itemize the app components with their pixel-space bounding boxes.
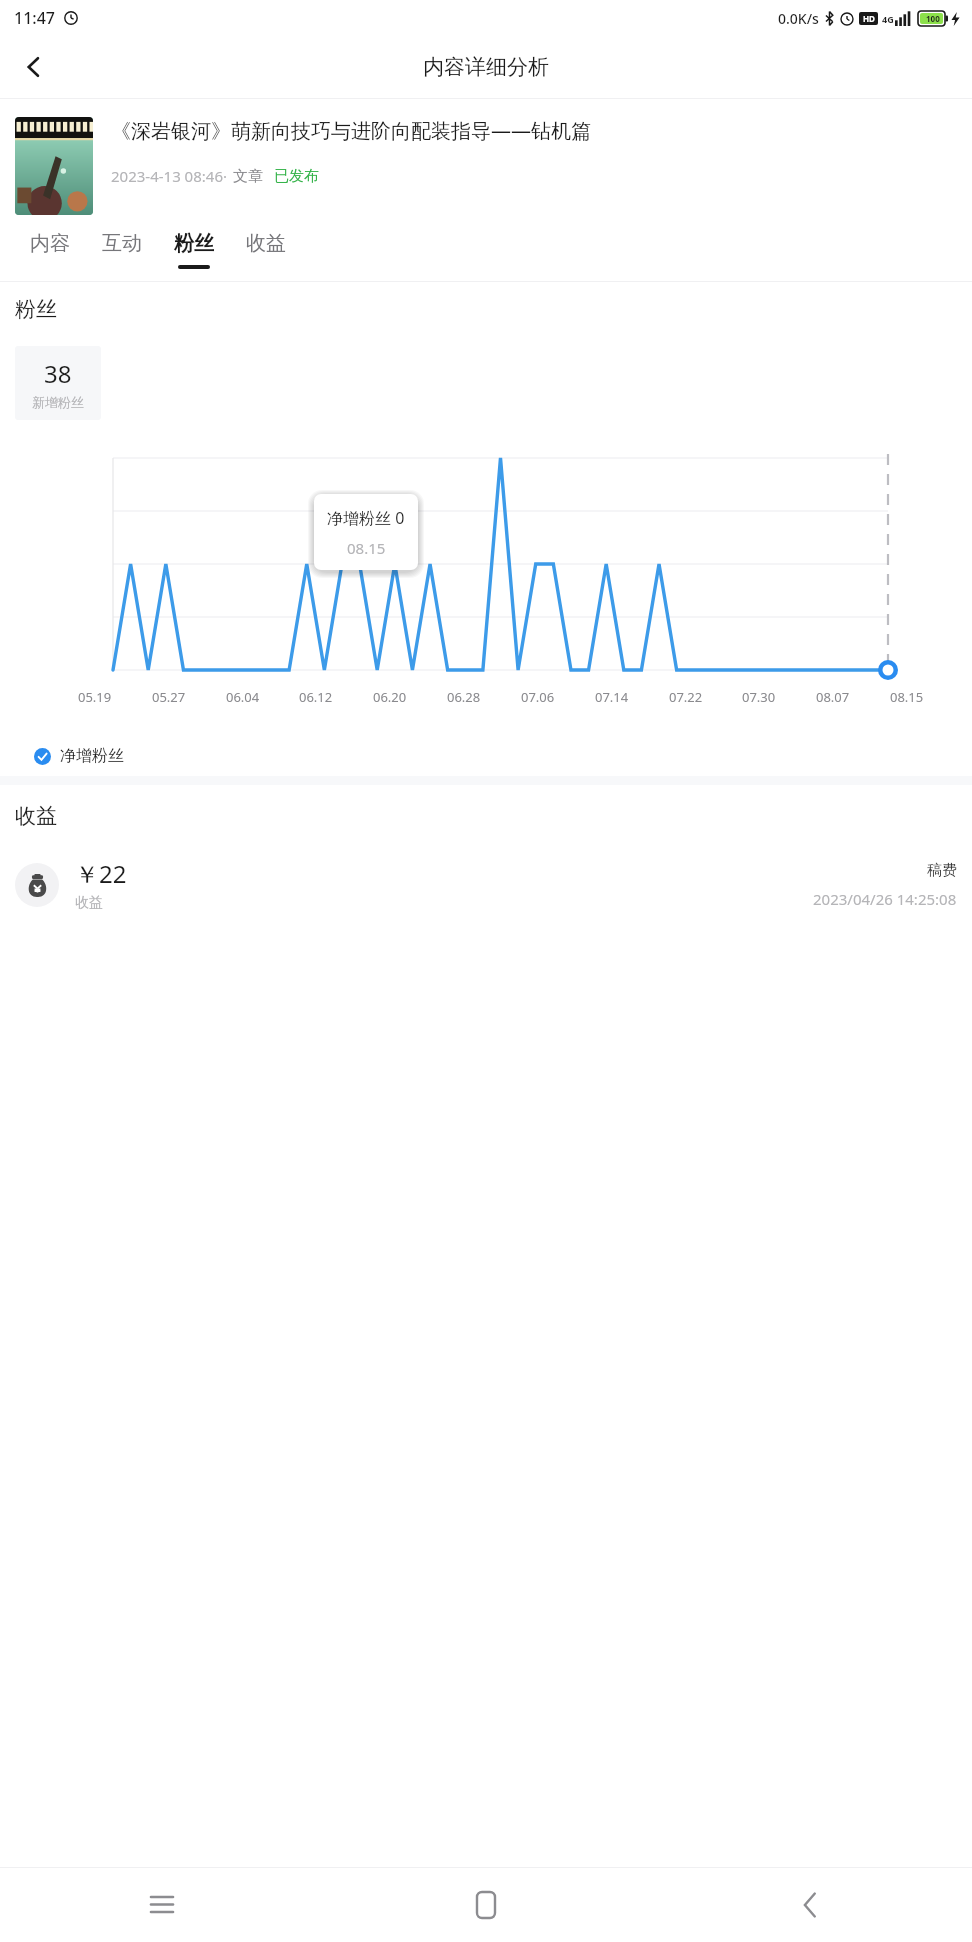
staticText: HD xyxy=(863,13,875,24)
staticText: 0.0K/s xyxy=(778,9,819,28)
staticText: 粉丝 xyxy=(174,231,214,256)
button[interactable]: Home xyxy=(324,1868,648,1942)
staticText: 05.27 xyxy=(152,688,186,706)
button[interactable]: 内容 xyxy=(14,219,86,281)
staticText: 收益 xyxy=(75,894,103,912)
staticText: 2023/04/26 14:25:08 xyxy=(813,889,957,909)
staticText: 06.12 xyxy=(299,688,333,706)
button[interactable]: 粉丝 xyxy=(158,219,230,281)
button[interactable]: ￥22 xyxy=(0,855,972,914)
staticText: 08.15 xyxy=(347,538,386,558)
staticText: 《深岩银河》萌新向技巧与进阶向配装指导――钻机篇 xyxy=(111,117,591,144)
staticText: 11:47 xyxy=(14,7,55,29)
staticText: 新增粉丝 xyxy=(32,394,84,410)
staticText: 稿费 xyxy=(927,861,957,880)
button[interactable]: 净增粉丝 xyxy=(34,746,124,766)
staticText: 内容 xyxy=(30,231,70,256)
staticText: 07.22 xyxy=(669,688,703,706)
button[interactable]: 收益 xyxy=(230,219,302,281)
staticText: 07.14 xyxy=(595,688,629,706)
staticText: 100 xyxy=(926,13,940,24)
staticText: 内容详细分析 xyxy=(423,54,549,80)
staticText: 07.06 xyxy=(521,688,555,706)
button[interactable]: Recent apps xyxy=(0,1868,324,1942)
button[interactable]: 38 xyxy=(15,346,101,420)
staticText: 收益 xyxy=(15,803,57,829)
staticText: 06.04 xyxy=(226,688,260,706)
staticText: 2023-4-13 08:46· xyxy=(111,166,227,186)
staticText: 07.30 xyxy=(742,688,776,706)
staticText: 08.07 xyxy=(816,688,850,706)
button[interactable]: Back xyxy=(648,1868,972,1942)
staticText: 38 xyxy=(44,357,72,390)
staticText: 4G xyxy=(882,13,894,25)
staticText: 收益 xyxy=(246,231,286,256)
staticText: 已发布 xyxy=(274,167,319,186)
staticText: 文章 xyxy=(233,167,263,186)
button[interactable]: 互动 xyxy=(86,219,158,281)
staticText: 粉丝 xyxy=(15,296,57,322)
staticText: 06.28 xyxy=(447,688,481,706)
staticText: 06.20 xyxy=(373,688,407,706)
button[interactable]: Back xyxy=(8,41,60,93)
staticText: ￥22 xyxy=(75,857,127,890)
staticText: 净增粉丝 0 xyxy=(327,507,405,529)
staticText: 互动 xyxy=(102,231,142,256)
staticText: 净增粉丝 xyxy=(60,746,124,766)
staticText: 05.19 xyxy=(78,688,112,706)
staticText: 08.15 xyxy=(890,688,924,706)
button[interactable]: 《深岩银河》萌新向技巧与进阶向配装指导――钻机篇 xyxy=(0,99,972,219)
